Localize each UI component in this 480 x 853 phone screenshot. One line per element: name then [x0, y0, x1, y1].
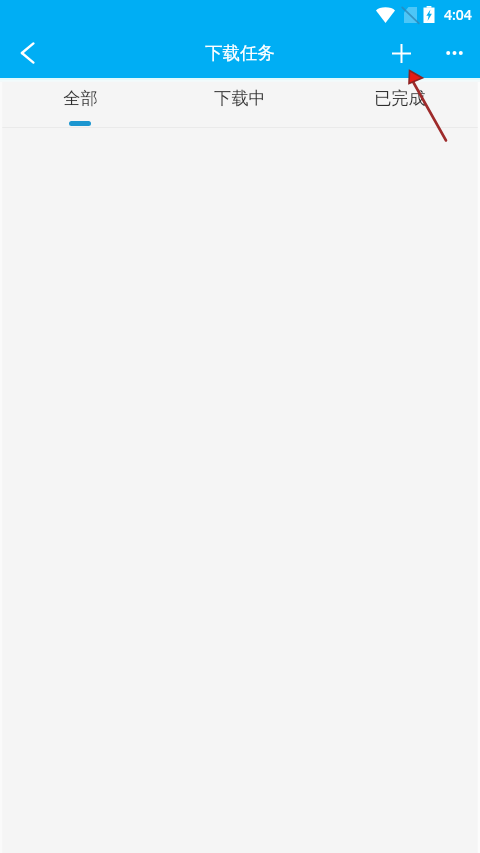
staticText: 下载任务	[205, 42, 275, 64]
button[interactable]: Add	[378, 28, 428, 78]
button[interactable]: 已完成	[320, 78, 480, 127]
staticText: 已完成	[374, 87, 426, 109]
staticText: 下载中	[214, 87, 266, 109]
staticText: 4:04	[444, 5, 472, 24]
button[interactable]: More options	[428, 28, 480, 78]
button[interactable]: Back	[0, 28, 52, 78]
staticText: 全部	[63, 87, 98, 109]
button[interactable]: 下载中	[160, 78, 320, 127]
button[interactable]: 全部	[0, 78, 160, 127]
